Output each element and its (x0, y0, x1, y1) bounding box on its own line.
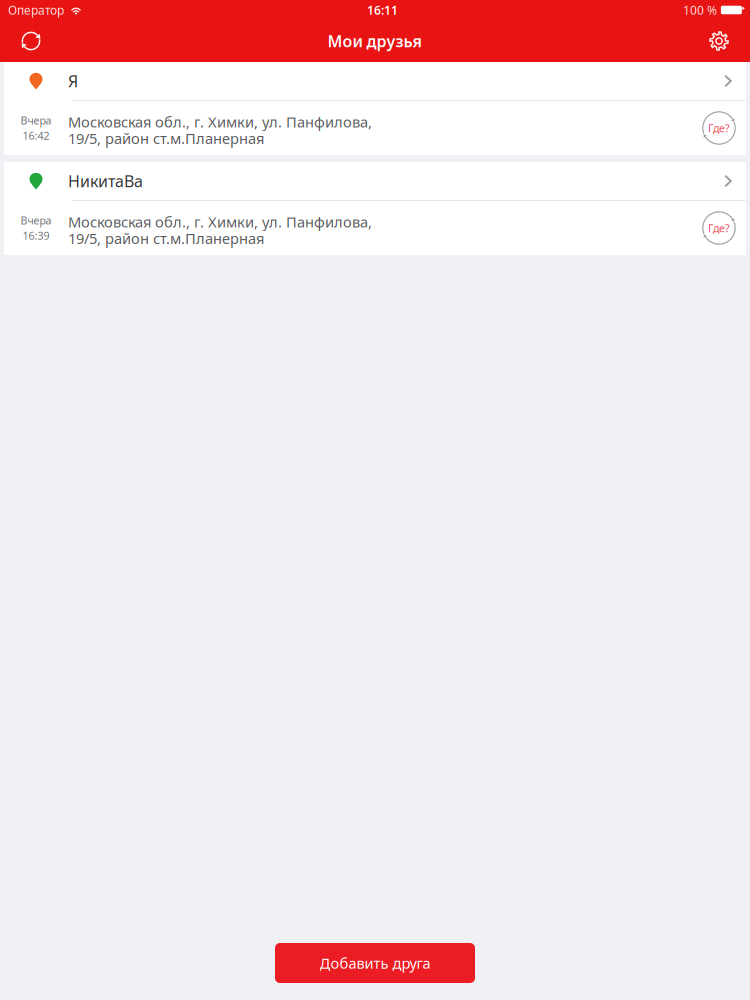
button[interactable]: Где? Обновить местоположение (701, 210, 737, 246)
staticText: Вчера (20, 213, 51, 227)
button[interactable]: НикитаВа (4, 162, 746, 200)
staticText: Московская обл., г. Химки, ул. Панфилова… (68, 112, 372, 131)
staticText: Где? (708, 121, 730, 135)
button[interactable]: Настройки (688, 20, 750, 62)
staticText: НикитаВа (68, 170, 143, 192)
staticText: 16:39 (22, 228, 49, 243)
staticText: Добавить друга (319, 953, 430, 973)
button[interactable]: Вчера (4, 101, 701, 155)
button[interactable]: Где? Обновить местоположение (701, 110, 737, 146)
button[interactable]: Обновить (0, 20, 62, 62)
button[interactable]: Добавить друга (275, 943, 475, 983)
staticText: 19/5, район ст.м.Планерная (68, 228, 264, 248)
staticText: Я (68, 70, 78, 92)
staticText: 16:42 (22, 128, 49, 143)
staticText: Мои друзья (327, 30, 422, 52)
staticText: 100 % (683, 2, 717, 18)
button[interactable]: Я (4, 62, 746, 100)
staticText: Где? (708, 221, 730, 235)
staticText: Вчера (20, 113, 51, 127)
staticText: 19/5, район ст.м.Планерная (68, 128, 264, 148)
button[interactable]: Вчера (4, 201, 701, 255)
staticText: 16:11 (367, 2, 398, 18)
staticText: Московская обл., г. Химки, ул. Панфилова… (68, 212, 372, 231)
staticText: Оператор (8, 2, 64, 18)
